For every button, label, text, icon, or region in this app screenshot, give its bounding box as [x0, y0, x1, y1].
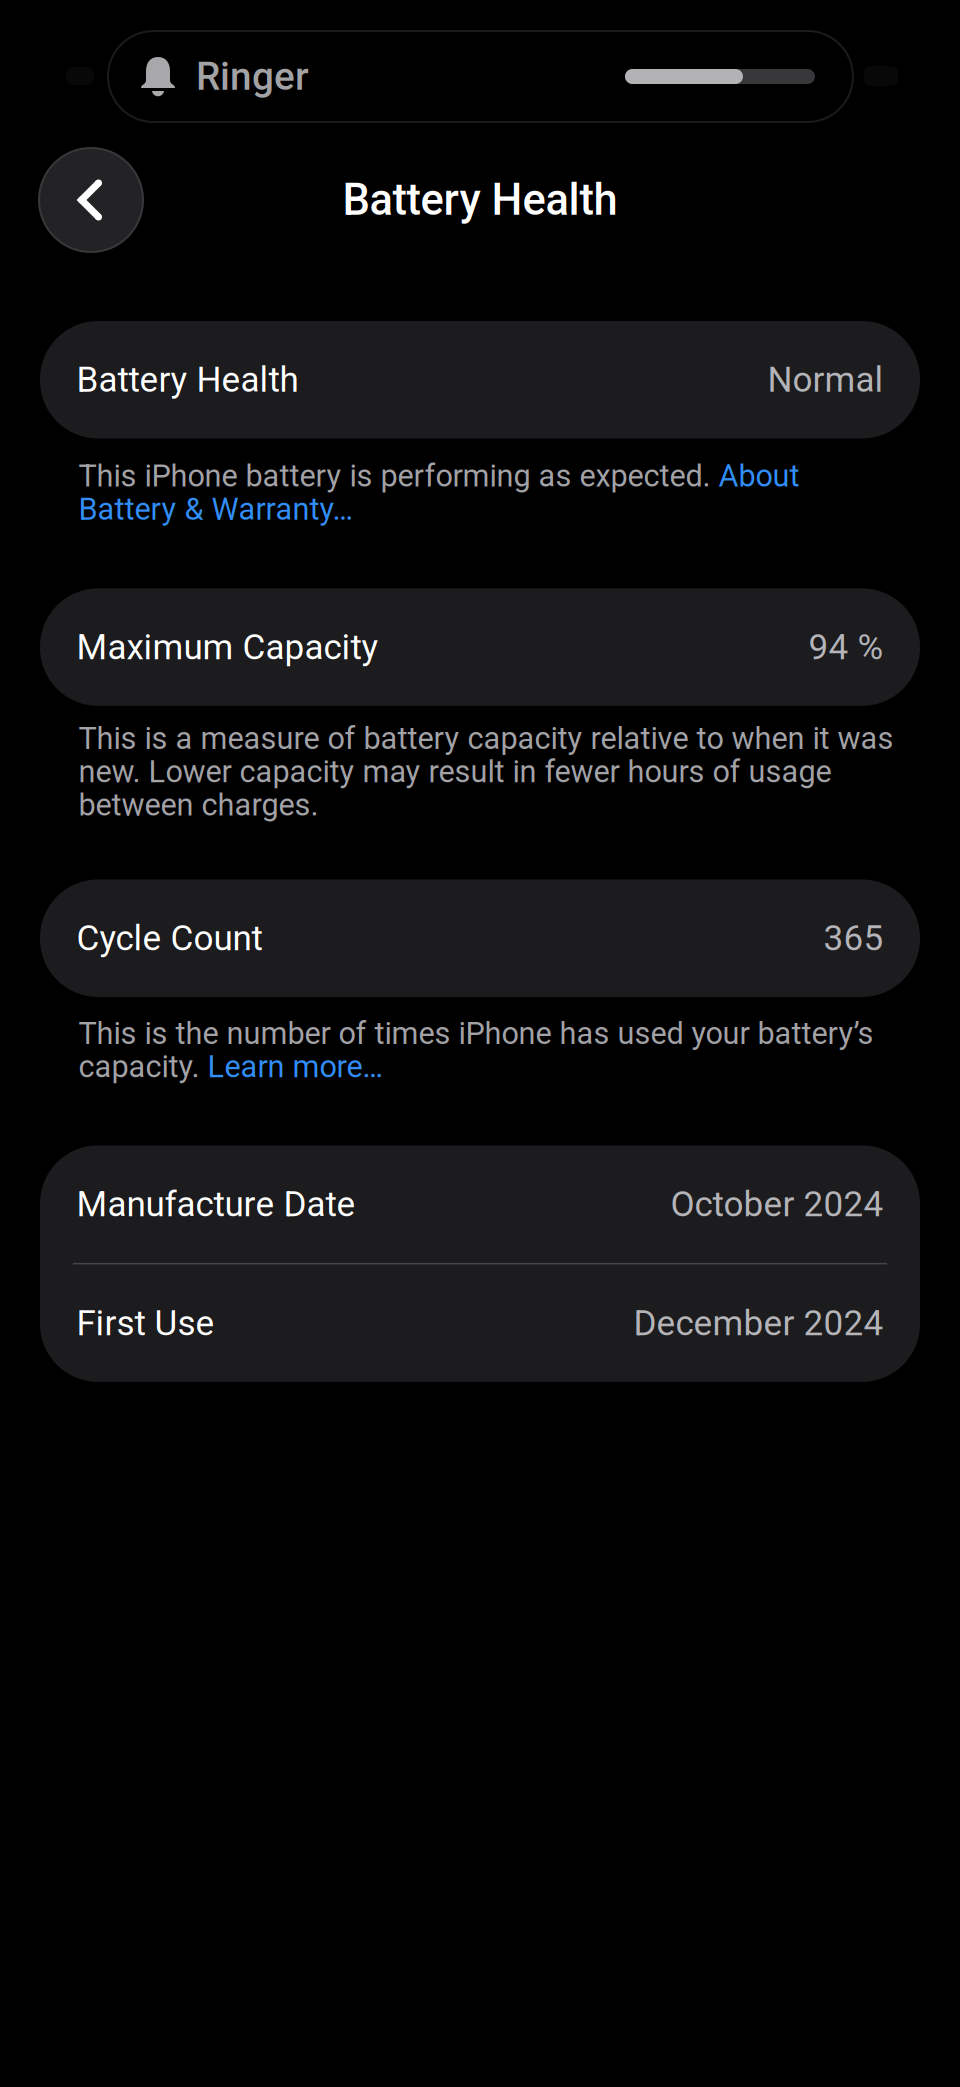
button[interactable]: Battery Health — [40, 321, 920, 438]
button[interactable]: Ringer volume — [108, 31, 853, 122]
button[interactable]: Maximum Capacity — [40, 588, 920, 706]
staticText: 365 — [823, 918, 883, 959]
staticText: Normal — [767, 359, 883, 400]
button[interactable]: Back — [39, 148, 143, 252]
staticText: October 2024 — [670, 1184, 883, 1225]
staticText: Battery Health — [76, 359, 298, 400]
staticText: 94 % — [808, 627, 883, 668]
staticText: between charges. — [78, 787, 318, 823]
staticText: First Use — [76, 1303, 214, 1344]
staticText: Maximum Capacity — [76, 627, 378, 668]
staticText: December 2024 — [633, 1303, 883, 1344]
staticText: Cycle Count — [76, 918, 262, 959]
staticText: About — [718, 458, 799, 494]
button[interactable]: Cycle Count — [40, 879, 920, 997]
staticText: This is the number of times iPhone has u… — [78, 1016, 873, 1051]
staticText: new. Lower capacity may result in fewer … — [78, 754, 831, 790]
staticText: This is a measure of battery capacity re… — [78, 720, 893, 756]
staticText: capacity. — [78, 1049, 207, 1085]
button[interactable]: First Use — [40, 1264, 920, 1382]
staticText: Battery Health — [342, 174, 617, 225]
staticText: Learn more… — [207, 1049, 383, 1085]
button[interactable]: Manufacture Date — [40, 1145, 920, 1263]
staticText: This iPhone battery is performing as exp… — [78, 458, 718, 494]
staticText: Ringer — [196, 54, 309, 99]
staticText: Manufacture Date — [76, 1184, 355, 1225]
staticText: Battery & Warranty… — [78, 491, 353, 527]
